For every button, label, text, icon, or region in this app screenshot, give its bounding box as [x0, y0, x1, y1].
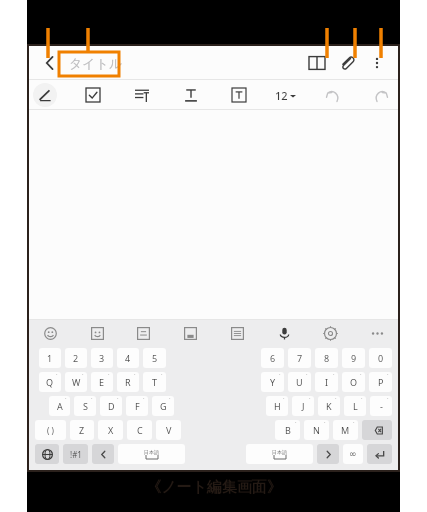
- button[interactable]: Back: [35, 48, 65, 78]
- button[interactable]: Next: [317, 444, 339, 464]
- button[interactable]: 6: [261, 348, 284, 368]
- button[interactable]: 4: [117, 348, 139, 368]
- button[interactable]: V: [156, 420, 181, 440]
- button[interactable]: Space: [246, 444, 313, 464]
- staticText: N: [313, 424, 320, 436]
- button[interactable]: E: [91, 372, 113, 392]
- staticText: ´: [333, 373, 335, 380]
- button[interactable]: More options: [362, 48, 392, 78]
- button[interactable]: Undo: [319, 82, 345, 108]
- staticText: 8: [324, 352, 330, 364]
- button[interactable]: N: [304, 420, 329, 440]
- button[interactable]: Backspace: [362, 420, 392, 440]
- staticText: ´: [143, 397, 145, 404]
- staticText: U: [296, 376, 303, 388]
- button[interactable]: H: [266, 396, 288, 416]
- button[interactable]: More: [366, 322, 388, 344]
- button[interactable]: U: [288, 372, 311, 392]
- button[interactable]: J: [292, 396, 314, 416]
- staticText: 0: [378, 352, 384, 364]
- staticText: 6: [270, 352, 276, 364]
- staticText: ( ): [47, 425, 54, 436]
- button[interactable]: Attach: [332, 48, 362, 78]
- button[interactable]: Space: [118, 444, 185, 464]
- staticText: 3: [99, 352, 105, 364]
- staticText: ´: [353, 421, 355, 428]
- button[interactable]: O: [342, 372, 365, 392]
- button[interactable]: B: [275, 420, 300, 440]
- button[interactable]: タイトル: [69, 46, 302, 80]
- button[interactable]: 7: [288, 348, 311, 368]
- button[interactable]: ∞: [343, 444, 363, 464]
- button[interactable]: Y: [261, 372, 284, 392]
- button[interactable]: M: [333, 420, 358, 440]
- button[interactable]: S: [74, 396, 96, 416]
- staticText: ´: [387, 397, 389, 404]
- button[interactable]: Previous: [92, 444, 114, 464]
- button[interactable]: W: [65, 372, 87, 392]
- button[interactable]: P: [369, 372, 392, 392]
- button[interactable]: Pen: [33, 83, 57, 107]
- button[interactable]: X: [98, 420, 123, 440]
- button[interactable]: K: [318, 396, 340, 416]
- button[interactable]: L: [344, 396, 366, 416]
- staticText: ´: [117, 397, 119, 404]
- staticText: G: [160, 400, 167, 412]
- button[interactable]: Z: [70, 420, 94, 440]
- button[interactable]: D: [100, 396, 122, 416]
- button[interactable]: Language: [35, 444, 59, 464]
- staticText: ´: [283, 397, 285, 404]
- staticText: ´: [169, 397, 171, 404]
- button[interactable]: -: [370, 396, 392, 416]
- staticText: Q: [46, 376, 54, 388]
- button[interactable]: !#1: [63, 444, 88, 464]
- button[interactable]: A: [49, 396, 70, 416]
- button[interactable]: I: [315, 372, 338, 392]
- staticText: D: [108, 400, 115, 412]
- staticText: 4: [125, 352, 131, 364]
- button[interactable]: T: [143, 372, 166, 392]
- button[interactable]: Enter: [367, 444, 392, 464]
- button[interactable]: R: [117, 372, 139, 392]
- button[interactable]: Text style: [178, 82, 204, 108]
- button[interactable]: Redo: [368, 82, 394, 108]
- button[interactable]: F: [126, 396, 148, 416]
- button[interactable]: Stickers: [86, 322, 108, 344]
- button[interactable]: ( ): [35, 420, 66, 440]
- button[interactable]: Checklist: [80, 82, 106, 108]
- staticText: 日本語: [272, 449, 287, 455]
- staticText: 7: [297, 352, 303, 364]
- staticText: ´: [387, 373, 389, 380]
- button[interactable]: Q: [39, 372, 61, 392]
- button[interactable]: Voice input: [273, 322, 295, 344]
- staticText: X: [108, 424, 114, 436]
- button[interactable]: GIF: [132, 322, 154, 344]
- button[interactable]: 5: [143, 348, 166, 368]
- button[interactable]: Settings: [319, 322, 341, 344]
- button[interactable]: 2: [65, 348, 87, 368]
- staticText: ´: [324, 421, 326, 428]
- button[interactable]: Text box: [226, 82, 252, 108]
- button[interactable]: Clipboard: [179, 322, 201, 344]
- button[interactable]: G: [152, 396, 174, 416]
- button[interactable]: 1: [39, 348, 61, 368]
- staticText: ´: [56, 373, 58, 380]
- button[interactable]: C: [127, 420, 152, 440]
- button[interactable]: Emoji: [39, 322, 61, 344]
- staticText: T: [152, 376, 158, 388]
- button[interactable]: 3: [91, 348, 113, 368]
- button[interactable]: 9: [342, 348, 365, 368]
- staticText: H: [274, 400, 281, 412]
- button[interactable]: Keyboard mode: [226, 322, 248, 344]
- staticText: K: [326, 400, 332, 412]
- button[interactable]: Paragraph style: [129, 82, 155, 108]
- staticText: ´: [306, 373, 308, 380]
- button[interactable]: 12: [275, 88, 296, 103]
- button[interactable]: 8: [315, 348, 338, 368]
- button[interactable]: 0: [369, 348, 392, 368]
- button[interactable]: View mode: [302, 48, 332, 78]
